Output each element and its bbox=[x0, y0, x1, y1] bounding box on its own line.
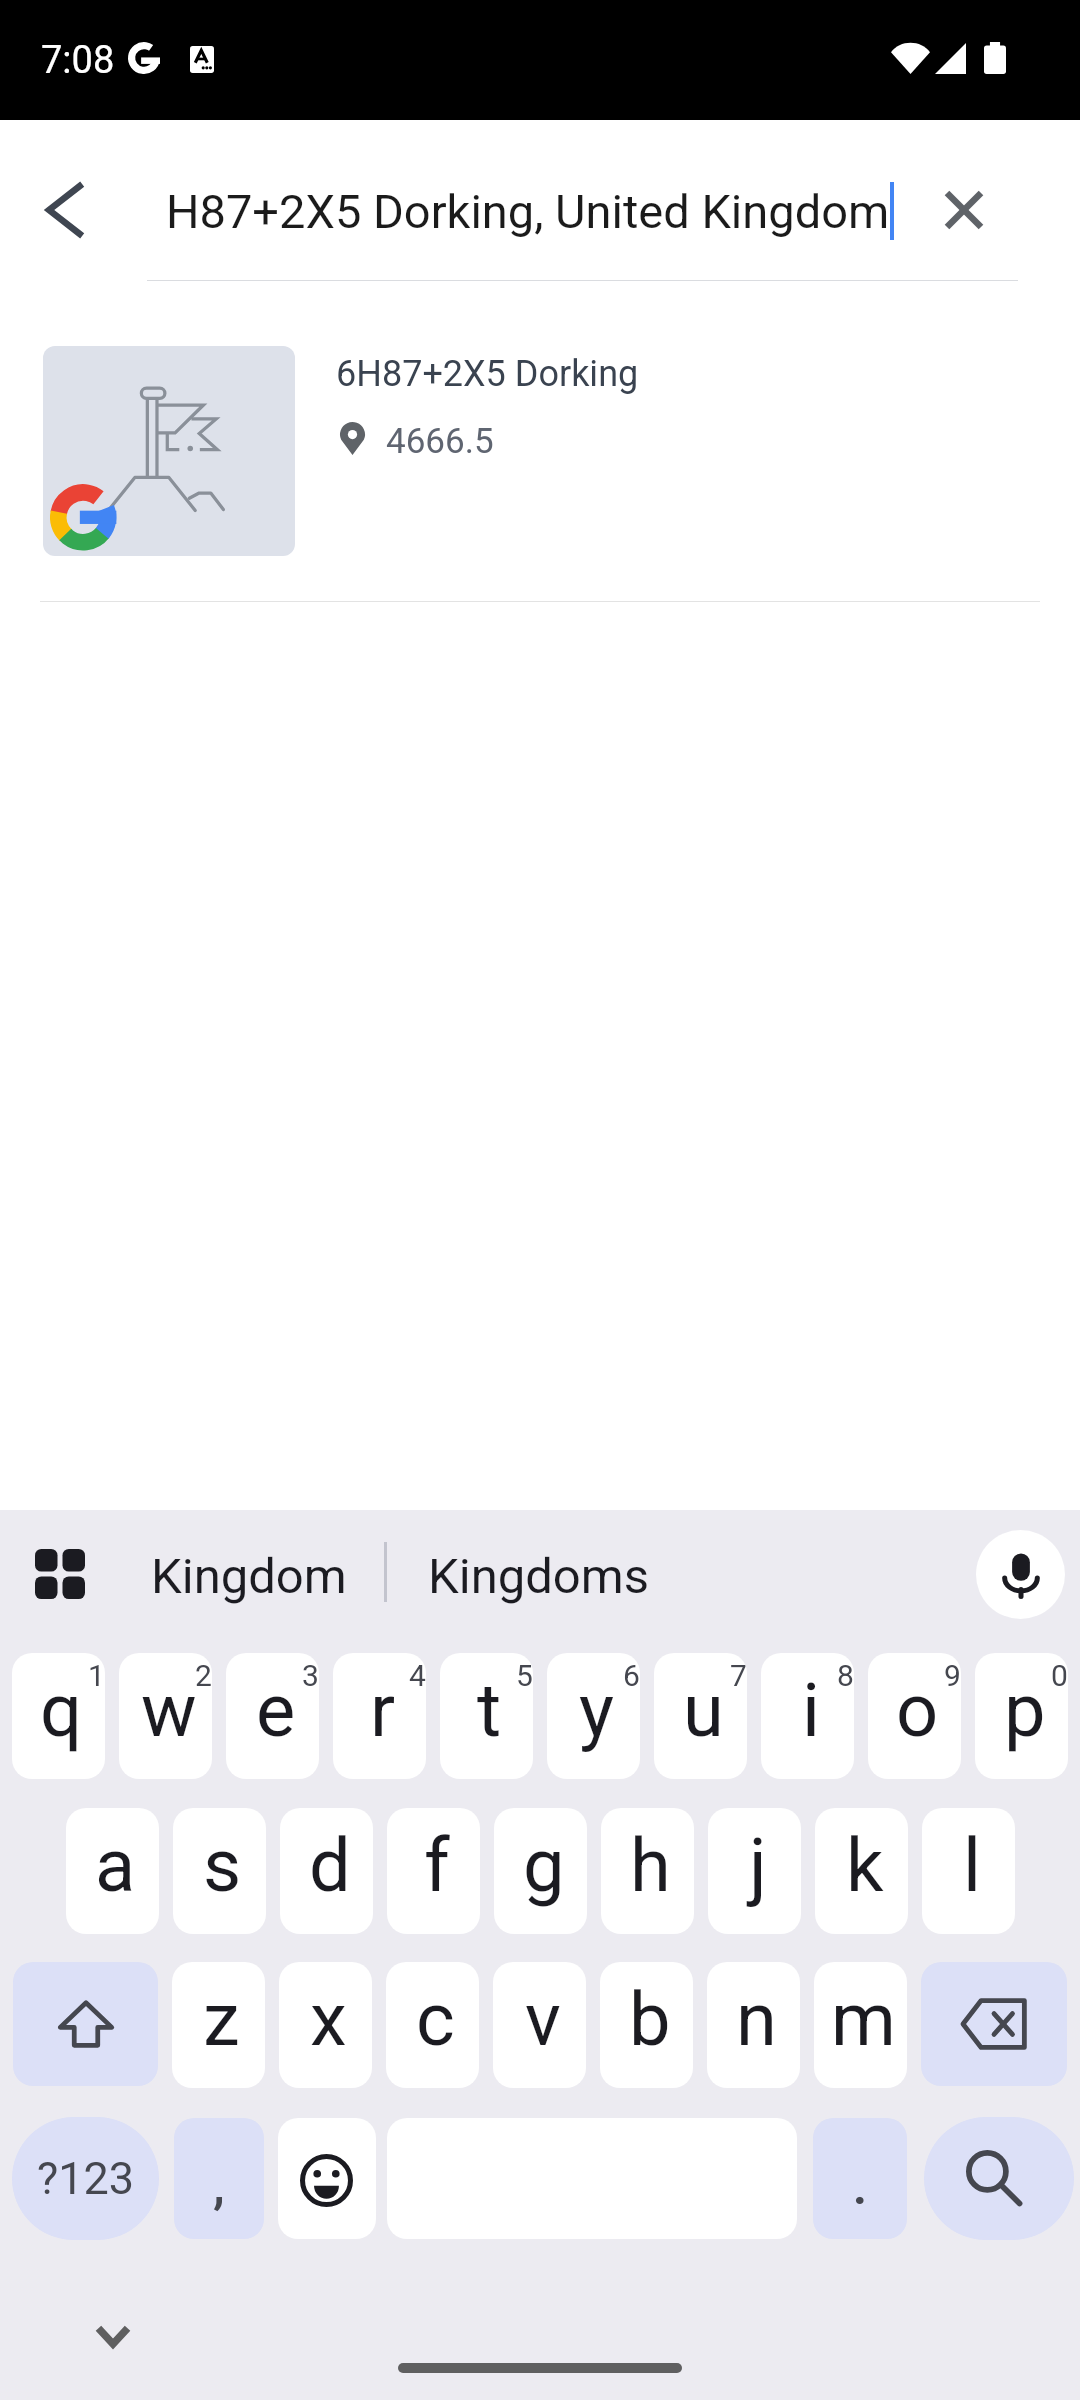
staticText: x bbox=[310, 1976, 347, 2063]
button[interactable]: a bbox=[66, 1808, 159, 1934]
staticText: 6H87+2X5 Dorking bbox=[336, 353, 639, 395]
staticText: m bbox=[831, 1976, 896, 2063]
button[interactable]: Clear search bbox=[909, 155, 1019, 265]
button[interactable]: ?123 bbox=[12, 2117, 159, 2240]
staticText: q bbox=[40, 1667, 83, 1754]
button[interactable]: u bbox=[654, 1653, 747, 1779]
staticText: H87+2X5 Dorking, United Kingdom bbox=[166, 184, 890, 239]
button[interactable]: z bbox=[172, 1962, 265, 2088]
staticText: s bbox=[203, 1822, 242, 1909]
button[interactable]: r bbox=[333, 1653, 426, 1779]
staticText: i bbox=[802, 1667, 820, 1754]
button[interactable]: Keyboard toolbar bbox=[14, 1528, 106, 1620]
staticText: l bbox=[963, 1822, 981, 1909]
button[interactable]: p bbox=[975, 1653, 1068, 1779]
staticText: j bbox=[749, 1822, 767, 1909]
button[interactable]: Kingdom bbox=[124, 1505, 374, 1648]
staticText: e bbox=[256, 1667, 296, 1754]
button[interactable]: Voice input bbox=[976, 1530, 1065, 1619]
staticText: , bbox=[213, 2158, 225, 2214]
staticText: t bbox=[477, 1667, 502, 1754]
button[interactable]: , bbox=[174, 2118, 264, 2239]
staticText: p bbox=[1004, 1667, 1046, 1754]
staticText: 2 bbox=[195, 1658, 212, 1693]
staticText: Kingdoms bbox=[428, 1548, 650, 1605]
staticText: Kingdom bbox=[151, 1548, 347, 1605]
button[interactable]: y bbox=[547, 1653, 640, 1779]
button[interactable]: v bbox=[493, 1962, 586, 2088]
button[interactable]: e bbox=[226, 1653, 319, 1779]
button[interactable]: t bbox=[440, 1653, 533, 1779]
button[interactable]: Backspace bbox=[921, 1962, 1067, 2086]
staticText: 5 bbox=[516, 1658, 533, 1693]
staticText: 9 bbox=[944, 1658, 961, 1693]
button[interactable]: k bbox=[815, 1808, 908, 1934]
button[interactable]: Shift bbox=[13, 1962, 158, 2086]
staticText: f bbox=[424, 1822, 450, 1909]
button[interactable]: s bbox=[173, 1808, 266, 1934]
button[interactable]: n bbox=[707, 1962, 800, 2088]
staticText: b bbox=[629, 1976, 671, 2063]
button[interactable]: Hide keyboard bbox=[78, 2302, 148, 2372]
staticText: 7 bbox=[730, 1658, 747, 1693]
staticText: r bbox=[370, 1667, 396, 1754]
staticText: k bbox=[846, 1822, 884, 1909]
button[interactable]: b bbox=[600, 1962, 693, 2088]
button[interactable]: Search bbox=[924, 2117, 1074, 2240]
staticText: . bbox=[853, 2159, 867, 2215]
button[interactable]: g bbox=[494, 1808, 587, 1934]
staticText: w bbox=[141, 1667, 197, 1754]
staticText: 0 bbox=[1051, 1658, 1068, 1693]
button[interactable]: l bbox=[922, 1808, 1015, 1934]
staticText: h bbox=[630, 1822, 671, 1909]
staticText: 8 bbox=[837, 1658, 854, 1693]
staticText: 6 bbox=[623, 1658, 640, 1693]
staticText: a bbox=[95, 1822, 136, 1909]
staticText: 7:08 bbox=[41, 38, 115, 83]
staticText: 4666.5 bbox=[386, 421, 494, 462]
button[interactable]: . bbox=[813, 2118, 907, 2239]
staticText: o bbox=[896, 1667, 939, 1754]
staticText: c bbox=[416, 1976, 455, 2063]
staticText: ?123 bbox=[37, 2152, 135, 2205]
button[interactable]: d bbox=[280, 1808, 373, 1934]
button[interactable]: Kingdoms bbox=[409, 1505, 669, 1648]
button[interactable]: Back bbox=[9, 155, 119, 265]
button[interactable]: Emoji bbox=[278, 2118, 376, 2239]
button[interactable]: h bbox=[601, 1808, 694, 1934]
staticText: v bbox=[525, 1976, 561, 2063]
button[interactable]: Search query bbox=[130, 150, 900, 270]
button[interactable]: q bbox=[12, 1653, 105, 1779]
button[interactable]: x bbox=[279, 1962, 372, 2088]
button[interactable]: c bbox=[386, 1962, 479, 2088]
staticText: u bbox=[683, 1667, 724, 1754]
staticText: d bbox=[309, 1822, 351, 1909]
button[interactable]: 6H87+2X5 Dorking bbox=[0, 320, 1080, 582]
button[interactable]: i bbox=[761, 1653, 854, 1779]
staticText: 1 bbox=[88, 1658, 105, 1693]
button[interactable]: f bbox=[387, 1808, 480, 1934]
button[interactable]: o bbox=[868, 1653, 961, 1779]
staticText: 4 bbox=[409, 1658, 426, 1693]
button[interactable]: m bbox=[814, 1962, 907, 2088]
staticText: z bbox=[203, 1976, 240, 2063]
staticText: y bbox=[579, 1667, 615, 1754]
staticText: 3 bbox=[302, 1658, 319, 1693]
staticText: n bbox=[736, 1976, 777, 2063]
staticText: g bbox=[523, 1822, 565, 1909]
button[interactable]: w bbox=[119, 1653, 212, 1779]
button[interactable]: j bbox=[708, 1808, 801, 1934]
